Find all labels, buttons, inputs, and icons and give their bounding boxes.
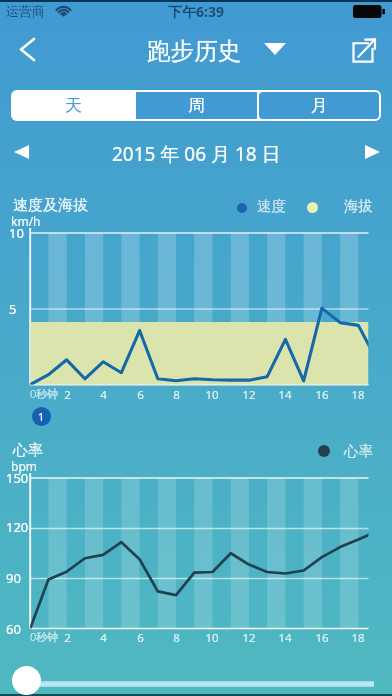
staticText: 速度 (257, 197, 286, 215)
button[interactable]: 月 (259, 92, 379, 119)
staticText: 5 (9, 300, 17, 318)
staticText: 12 (242, 630, 256, 646)
staticText: 10 (205, 387, 219, 403)
staticText: 2 (64, 630, 71, 646)
staticText: 16 (315, 630, 329, 646)
staticText: 0秒钟 (30, 629, 59, 644)
staticText: 天 (65, 95, 82, 116)
button[interactable]: 跑步历史 (147, 36, 241, 66)
staticText: 周 (188, 95, 205, 116)
staticText: 4 (100, 630, 107, 646)
staticText: 下午6:39 (168, 2, 224, 21)
button[interactable]: Previous day (2, 134, 40, 170)
staticText: 月 (311, 95, 328, 116)
staticText: 10 (9, 224, 24, 242)
button[interactable]: Share (341, 28, 385, 72)
staticText: 运营商 (6, 3, 45, 19)
staticText: 2015 年 06 月 18 日 (112, 141, 281, 167)
button[interactable]: Change range (255, 31, 295, 67)
staticText: 14 (278, 630, 292, 646)
button[interactable]: 周 (136, 92, 257, 119)
staticText: 8 (173, 387, 180, 403)
staticText: 150 (6, 469, 29, 487)
staticText: 12 (242, 387, 256, 403)
staticText: 6 (137, 387, 144, 403)
button[interactable]: Back (5, 27, 49, 71)
staticText: 0秒钟 (30, 386, 59, 401)
staticText: 海拔 (344, 197, 373, 215)
button[interactable]: 天 (13, 92, 134, 119)
staticText: 90 (6, 569, 21, 587)
staticText: 心率 (13, 441, 43, 460)
staticText: 6 (137, 630, 144, 646)
staticText: 120 (6, 518, 29, 536)
staticText: 4 (100, 387, 107, 403)
staticText: 14 (278, 387, 292, 403)
staticText: 速度及海拔 (13, 196, 88, 215)
staticText: km/h (11, 213, 41, 229)
staticText: 10 (205, 630, 219, 646)
staticText: 18 (351, 630, 365, 646)
staticText: 跑步历史 (147, 36, 241, 66)
staticText: 18 (351, 387, 365, 403)
staticText: 8 (173, 630, 180, 646)
staticText: bpm (11, 458, 37, 474)
staticText: 2 (64, 387, 71, 403)
staticText: 1 (38, 409, 45, 424)
staticText: 心率 (344, 442, 373, 460)
staticText: 60 (6, 620, 21, 638)
button[interactable]: Next day (353, 134, 391, 170)
button[interactable]: 1 (32, 407, 51, 426)
staticText: 16 (315, 387, 329, 403)
button[interactable]: Playback position (12, 666, 41, 695)
